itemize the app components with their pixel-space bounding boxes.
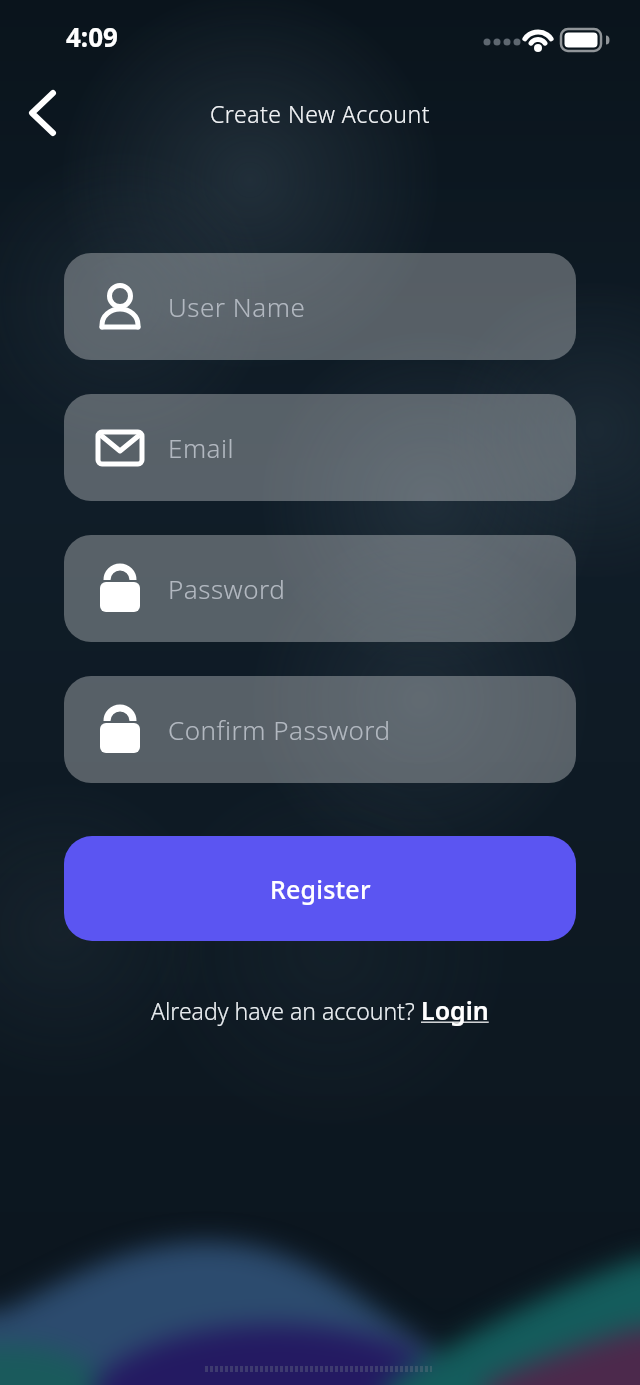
- staticText: Confirm Password: [168, 712, 391, 747]
- staticText: User Name: [168, 289, 306, 324]
- button[interactable]: User Name: [64, 253, 576, 360]
- button[interactable]: [16, 86, 70, 140]
- button[interactable]: Login: [421, 993, 489, 1027]
- staticText: Register: [270, 872, 371, 906]
- button[interactable]: Confirm Password: [64, 676, 576, 783]
- staticText: Already have an account?: [151, 995, 421, 1026]
- button[interactable]: Register: [64, 836, 576, 941]
- button[interactable]: Password: [64, 535, 576, 642]
- staticText: Login: [421, 993, 489, 1027]
- staticText: Email: [168, 430, 235, 465]
- staticText: Create New Account: [210, 98, 430, 129]
- button[interactable]: Email: [64, 394, 576, 501]
- staticText: Password: [168, 571, 286, 606]
- staticText: 4:09: [66, 19, 118, 54]
